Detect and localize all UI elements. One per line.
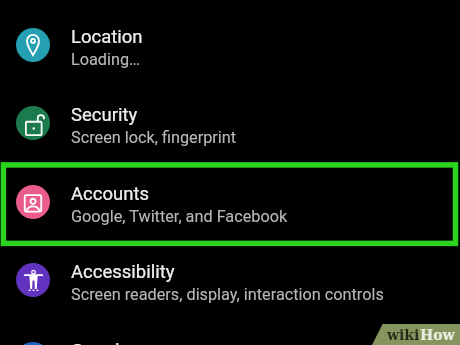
staticText: Loading…	[71, 50, 140, 69]
staticText: Security	[71, 104, 138, 126]
staticText: wiki	[387, 327, 420, 343]
staticText: Google, Twitter, and Facebook	[71, 207, 288, 226]
button[interactable]: Location	[0, 5, 460, 83]
staticText: Screen readers, display, interaction con…	[71, 285, 384, 304]
button[interactable]: Accounts	[0, 162, 460, 240]
staticText: Accessibility	[71, 261, 175, 283]
staticText: Google	[71, 340, 130, 345]
staticText: Location	[71, 26, 143, 48]
button[interactable]: Security	[0, 83, 460, 161]
staticText: Accounts	[71, 183, 150, 205]
button[interactable]: Accessibility	[0, 240, 460, 318]
button[interactable]: Google	[0, 319, 460, 345]
staticText: How	[420, 327, 455, 343]
staticText: Screen lock, fingerprint	[71, 128, 237, 147]
